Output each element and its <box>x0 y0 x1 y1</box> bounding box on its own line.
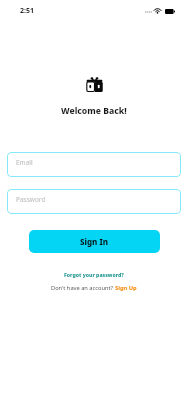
button[interactable]: Sign Up <box>115 284 137 292</box>
staticText: Email <box>16 158 33 167</box>
staticText: Don't have an account? <box>51 284 115 292</box>
other: App logo <box>86 77 103 92</box>
button[interactable]: Forgot your password? <box>64 271 124 278</box>
staticText: Password <box>16 195 46 204</box>
button[interactable]: Email <box>7 152 181 177</box>
staticText: Forgot your password? <box>64 271 124 278</box>
staticText: Sign In <box>80 236 109 247</box>
button[interactable]: Sign In <box>29 230 160 253</box>
staticText: Welcome Back! <box>61 105 127 117</box>
button[interactable]: Password <box>7 189 181 214</box>
staticText: 2:51 <box>20 6 34 16</box>
staticText: Sign Up <box>115 284 137 292</box>
